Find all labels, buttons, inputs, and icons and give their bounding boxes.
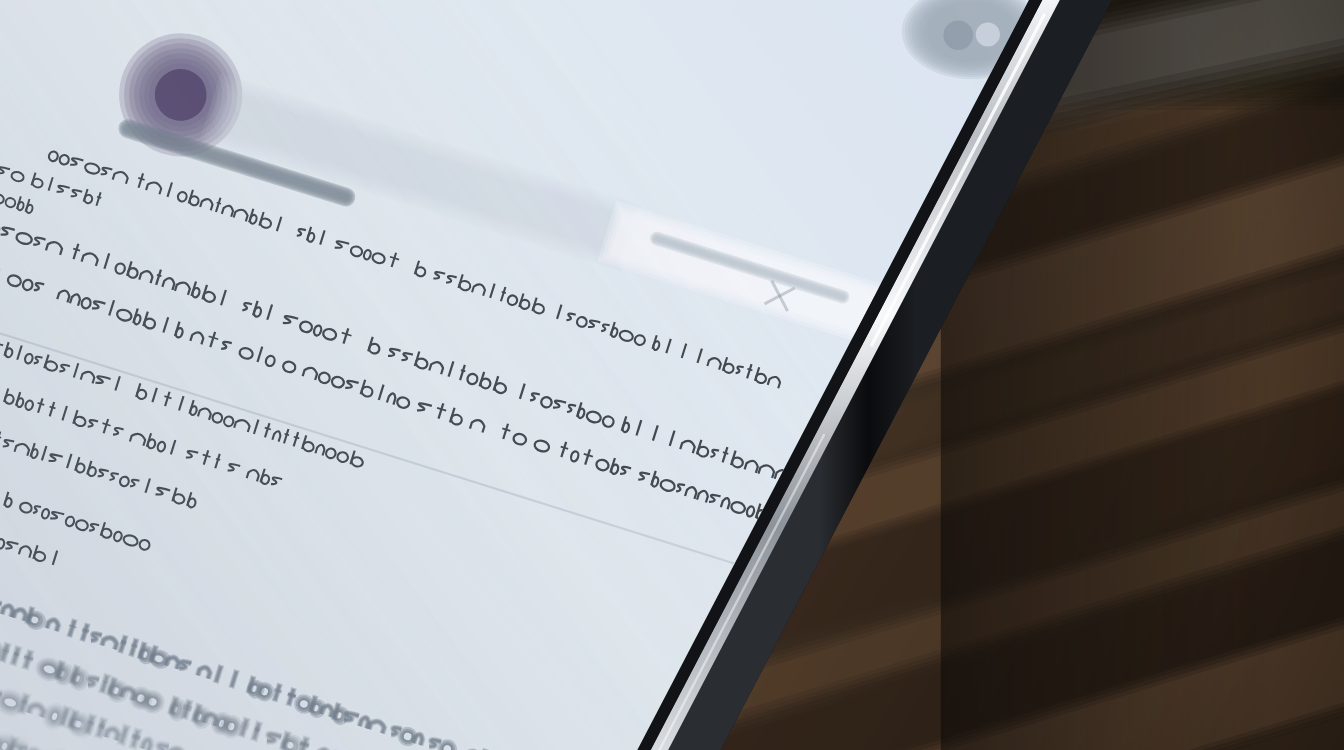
button[interactable]: Phone showing a document screen (0, 0, 1344, 750)
